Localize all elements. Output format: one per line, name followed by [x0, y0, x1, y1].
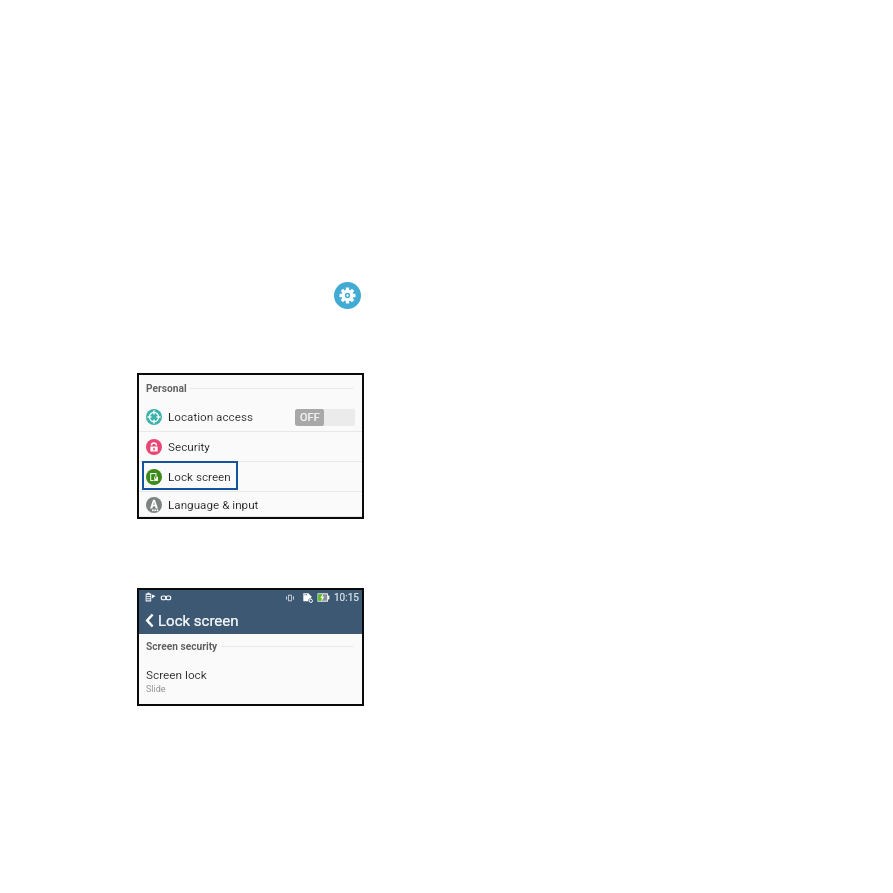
- button[interactable]: Lock screen: [139, 462, 362, 492]
- button[interactable]: Settings: [334, 282, 361, 309]
- button[interactable]: Screen lock: [139, 659, 362, 704]
- button[interactable]: Language & input: [139, 492, 362, 517]
- staticText: Personal: [146, 383, 187, 395]
- staticText: Language & input: [168, 498, 259, 512]
- button[interactable]: Security: [139, 432, 362, 462]
- staticText: Security: [168, 440, 210, 454]
- staticText: OFF: [300, 411, 320, 424]
- staticText: Screen security: [146, 641, 218, 653]
- button[interactable]: Location access: [139, 402, 362, 432]
- staticText: Location access: [168, 410, 253, 424]
- staticText: Lock screen: [158, 612, 239, 630]
- staticText: 10:15: [334, 592, 359, 604]
- staticText: Lock screen: [168, 470, 231, 484]
- other: Back: [143, 613, 158, 628]
- staticText: Screen lock: [146, 668, 207, 682]
- staticText: Slide: [146, 684, 166, 695]
- button[interactable]: OFF: [295, 409, 355, 426]
- button[interactable]: Back: [139, 607, 362, 634]
